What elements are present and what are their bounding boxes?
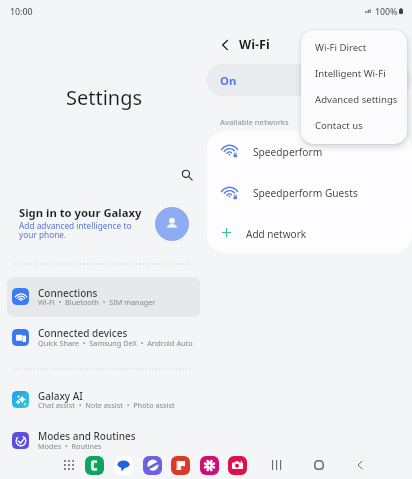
staticText: Wi-Fi: [239, 36, 270, 53]
staticText: Intelligent Wi-Fi: [315, 67, 386, 80]
staticText: Settings: [1, 84, 207, 111]
staticText: Speedperform: [253, 145, 323, 159]
staticText: Modes • Routines: [38, 441, 206, 451]
button[interactable]: Messages: [114, 456, 133, 475]
button[interactable]: Recents: [265, 453, 289, 477]
staticText: Add network: [246, 227, 307, 241]
staticText: On: [220, 73, 237, 88]
button[interactable]: [7, 380, 200, 420]
staticText: Connections: [38, 286, 98, 300]
button[interactable]: [207, 173, 412, 213]
button[interactable]: Apps: [60, 456, 78, 474]
button[interactable]: [7, 317, 200, 357]
button[interactable]: Back: [348, 453, 372, 477]
button[interactable]: Home: [307, 453, 331, 477]
staticText: Speedperform Guests: [253, 186, 358, 200]
staticText: 100%: [375, 6, 398, 18]
button[interactable]: Phone: [85, 456, 104, 475]
staticText: Add advanced intelligence to your phone.: [19, 220, 137, 241]
staticText: Contact us: [315, 119, 363, 132]
button[interactable]: On: [206, 64, 412, 96]
button[interactable]: [207, 131, 412, 171]
staticText: Galaxy AI: [38, 389, 83, 403]
staticText: Chat assist • Note assist • Photo assist: [38, 400, 206, 410]
button[interactable]: Search: [173, 161, 201, 189]
staticText: Quick Share • Samsung DeX • Android Auto: [38, 338, 206, 348]
button[interactable]: Back: [211, 31, 238, 58]
button[interactable]: Contact us: [301, 112, 407, 138]
staticText: 10:00: [10, 6, 33, 18]
button[interactable]: [7, 277, 200, 317]
button[interactable]: [207, 212, 412, 252]
staticText: Connected devices: [38, 326, 128, 340]
button[interactable]: Profile: [155, 207, 189, 241]
button[interactable]: Camera: [228, 456, 247, 475]
staticText: Wi-Fi Direct: [315, 41, 367, 54]
staticText: Wi-Fi • Bluetooth • SIM manager: [38, 297, 206, 307]
button[interactable]: [7, 420, 200, 460]
button[interactable]: Advanced settings: [301, 86, 407, 112]
button[interactable]: Intelligent Wi-Fi: [301, 60, 407, 86]
button[interactable]: [0, 198, 206, 248]
staticText: Advanced settings: [315, 93, 398, 106]
button[interactable]: Internet: [143, 456, 162, 475]
staticText: Modes and Routines: [38, 429, 136, 443]
button[interactable]: Wi-Fi Direct: [301, 34, 407, 60]
button[interactable]: Gallery: [200, 456, 219, 475]
button[interactable]: Notes: [171, 456, 190, 475]
staticText: Sign in to your Galaxy: [19, 205, 142, 220]
staticText: Available networks: [220, 117, 289, 127]
